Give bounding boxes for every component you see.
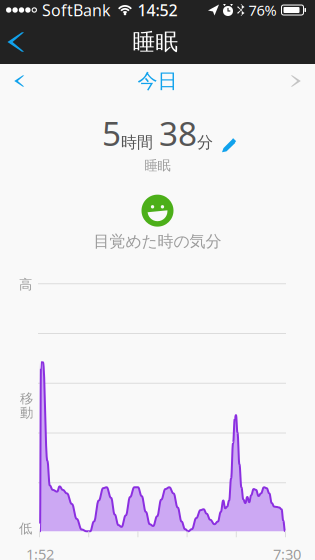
staticText: 低: [19, 520, 32, 537]
staticText: 76%: [248, 0, 276, 20]
staticText: SoftBank: [42, 0, 111, 21]
staticText: 目覚めた時の気分: [93, 232, 221, 251]
staticText: 38: [159, 111, 197, 155]
button[interactable]: Edit: [213, 137, 237, 155]
button[interactable]: Back: [0, 22, 31, 62]
staticText: 動: [20, 405, 33, 421]
staticText: 高: [19, 276, 32, 293]
staticText: 分: [197, 133, 213, 152]
staticText: 睡眠: [144, 157, 170, 174]
staticText: 7:30: [273, 544, 301, 560]
staticText: 14:52: [137, 0, 177, 21]
staticText: 移: [20, 390, 33, 407]
staticText: 睡眠: [132, 28, 178, 56]
staticText: 今日: [137, 69, 177, 93]
staticText: 時間: [121, 133, 153, 152]
staticText: 1:52: [26, 544, 54, 560]
staticText: 5: [102, 111, 121, 155]
button[interactable]: Previous day: [0, 65, 35, 96]
button[interactable]: Next day: [279, 65, 315, 96]
